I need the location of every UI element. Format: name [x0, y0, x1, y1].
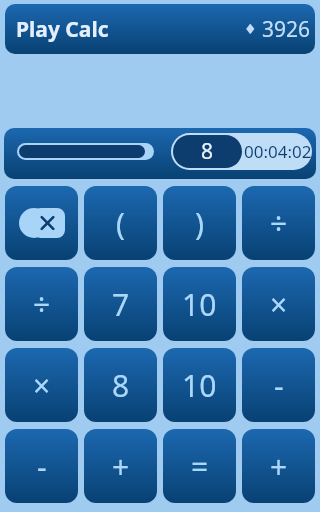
staticText: ×: [33, 365, 51, 406]
button[interactable]: 8: [171, 133, 312, 170]
button[interactable]: 10: [163, 267, 236, 341]
staticText: ÷: [270, 203, 288, 244]
button[interactable]: 10: [163, 348, 236, 422]
staticText: 8: [112, 365, 130, 406]
button[interactable]: ÷: [5, 267, 78, 341]
staticText: Play Calc: [16, 15, 109, 44]
button[interactable]: 7: [84, 267, 157, 341]
button[interactable]: =: [163, 429, 236, 503]
staticText: 10: [182, 365, 217, 406]
staticText: ♦: [244, 21, 257, 37]
button[interactable]: ×: [5, 348, 78, 422]
button[interactable]: +: [242, 429, 315, 503]
button[interactable]: (: [84, 186, 157, 260]
staticText: 3926: [262, 15, 311, 44]
staticText: (: [116, 203, 125, 244]
button[interactable]: ×: [242, 267, 315, 341]
staticText: -: [37, 446, 47, 487]
staticText: ×: [270, 284, 288, 325]
button[interactable]: -: [5, 429, 78, 503]
button[interactable]: +: [84, 429, 157, 503]
staticText: 8: [201, 137, 214, 166]
staticText: 7: [112, 284, 130, 325]
staticText: 10: [182, 284, 217, 325]
staticText: +: [112, 446, 130, 487]
button[interactable]: [5, 186, 78, 260]
staticText: +: [270, 446, 288, 487]
staticText: =: [191, 446, 209, 487]
button[interactable]: ): [163, 186, 236, 260]
staticText: 00:04:02: [244, 140, 312, 163]
staticText: ÷: [33, 284, 51, 325]
staticText: -: [274, 365, 284, 406]
button[interactable]: ÷: [242, 186, 315, 260]
button[interactable]: 8: [84, 348, 157, 422]
staticText: ): [195, 203, 204, 244]
button[interactable]: Play Calc: [5, 4, 315, 54]
button[interactable]: -: [242, 348, 315, 422]
